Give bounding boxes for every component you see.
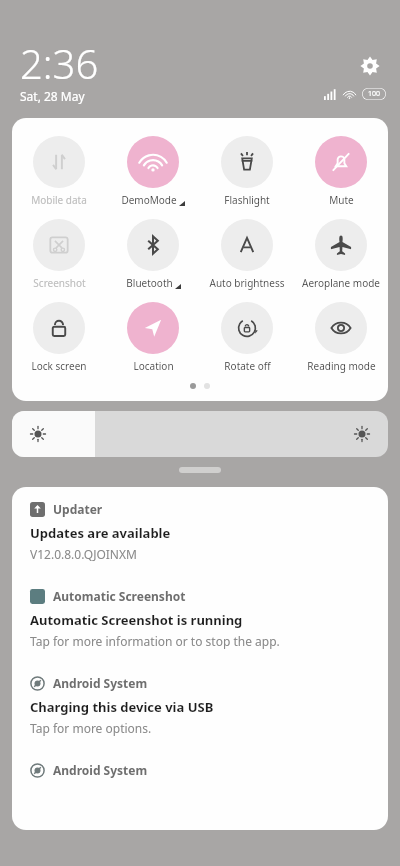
button[interactable]: Flashlight — [200, 134, 294, 209]
button[interactable]: Android System — [12, 748, 388, 790]
button[interactable]: Bluetooth — [106, 217, 200, 292]
button[interactable]: Brightness — [12, 411, 388, 457]
button[interactable]: Lock screen — [12, 300, 106, 375]
staticText: Bluetooth — [126, 276, 173, 290]
staticText: Reading mode — [307, 359, 376, 373]
staticText: DemoMode — [121, 193, 177, 207]
staticText: Flashlight — [224, 193, 270, 207]
staticText: Mute — [329, 193, 354, 207]
staticText: Sat, 28 May — [20, 88, 85, 104]
button[interactable]: Rotate off — [200, 300, 294, 375]
staticText: Tap for more options. — [30, 720, 152, 736]
staticText: Aeroplane mode — [302, 276, 380, 290]
staticText: Lock screen — [31, 359, 87, 373]
button[interactable]: Updater — [12, 487, 388, 574]
staticText: Charging this device via USB — [30, 698, 214, 716]
staticText: V12.0.8.0.QJOINXM — [30, 546, 137, 562]
staticText: Screenshot — [33, 276, 86, 290]
staticText: Auto brightness — [209, 276, 285, 290]
staticText: Mobile data — [31, 193, 87, 207]
staticText: Android System — [53, 675, 148, 691]
button[interactable]: Settings — [354, 50, 386, 82]
button[interactable]: Mute — [294, 134, 388, 209]
staticText: 2:36 — [20, 36, 99, 90]
staticText: Location — [133, 359, 174, 373]
staticText: Tap for more information or to stop the … — [30, 633, 280, 649]
button[interactable]: Screenshot — [12, 217, 106, 292]
button[interactable]: Location — [106, 300, 200, 375]
button[interactable]: Android System — [12, 661, 388, 748]
staticText: Updates are available — [30, 524, 171, 542]
staticText: Updater — [53, 501, 103, 517]
button[interactable]: DemoMode — [106, 134, 200, 209]
button[interactable]: Auto brightness — [200, 217, 294, 292]
staticText: Rotate off — [224, 359, 271, 373]
button[interactable]: Mobile data — [12, 134, 106, 209]
staticText: Android System — [53, 762, 148, 778]
button[interactable]: Aeroplane mode — [294, 217, 388, 292]
button[interactable]: Reading mode — [294, 300, 388, 375]
staticText: Automatic Screenshot — [53, 588, 186, 604]
button[interactable]: Automatic Screenshot — [12, 574, 388, 661]
staticText: 100 — [368, 89, 381, 99]
staticText: Automatic Screenshot is running — [30, 611, 243, 629]
